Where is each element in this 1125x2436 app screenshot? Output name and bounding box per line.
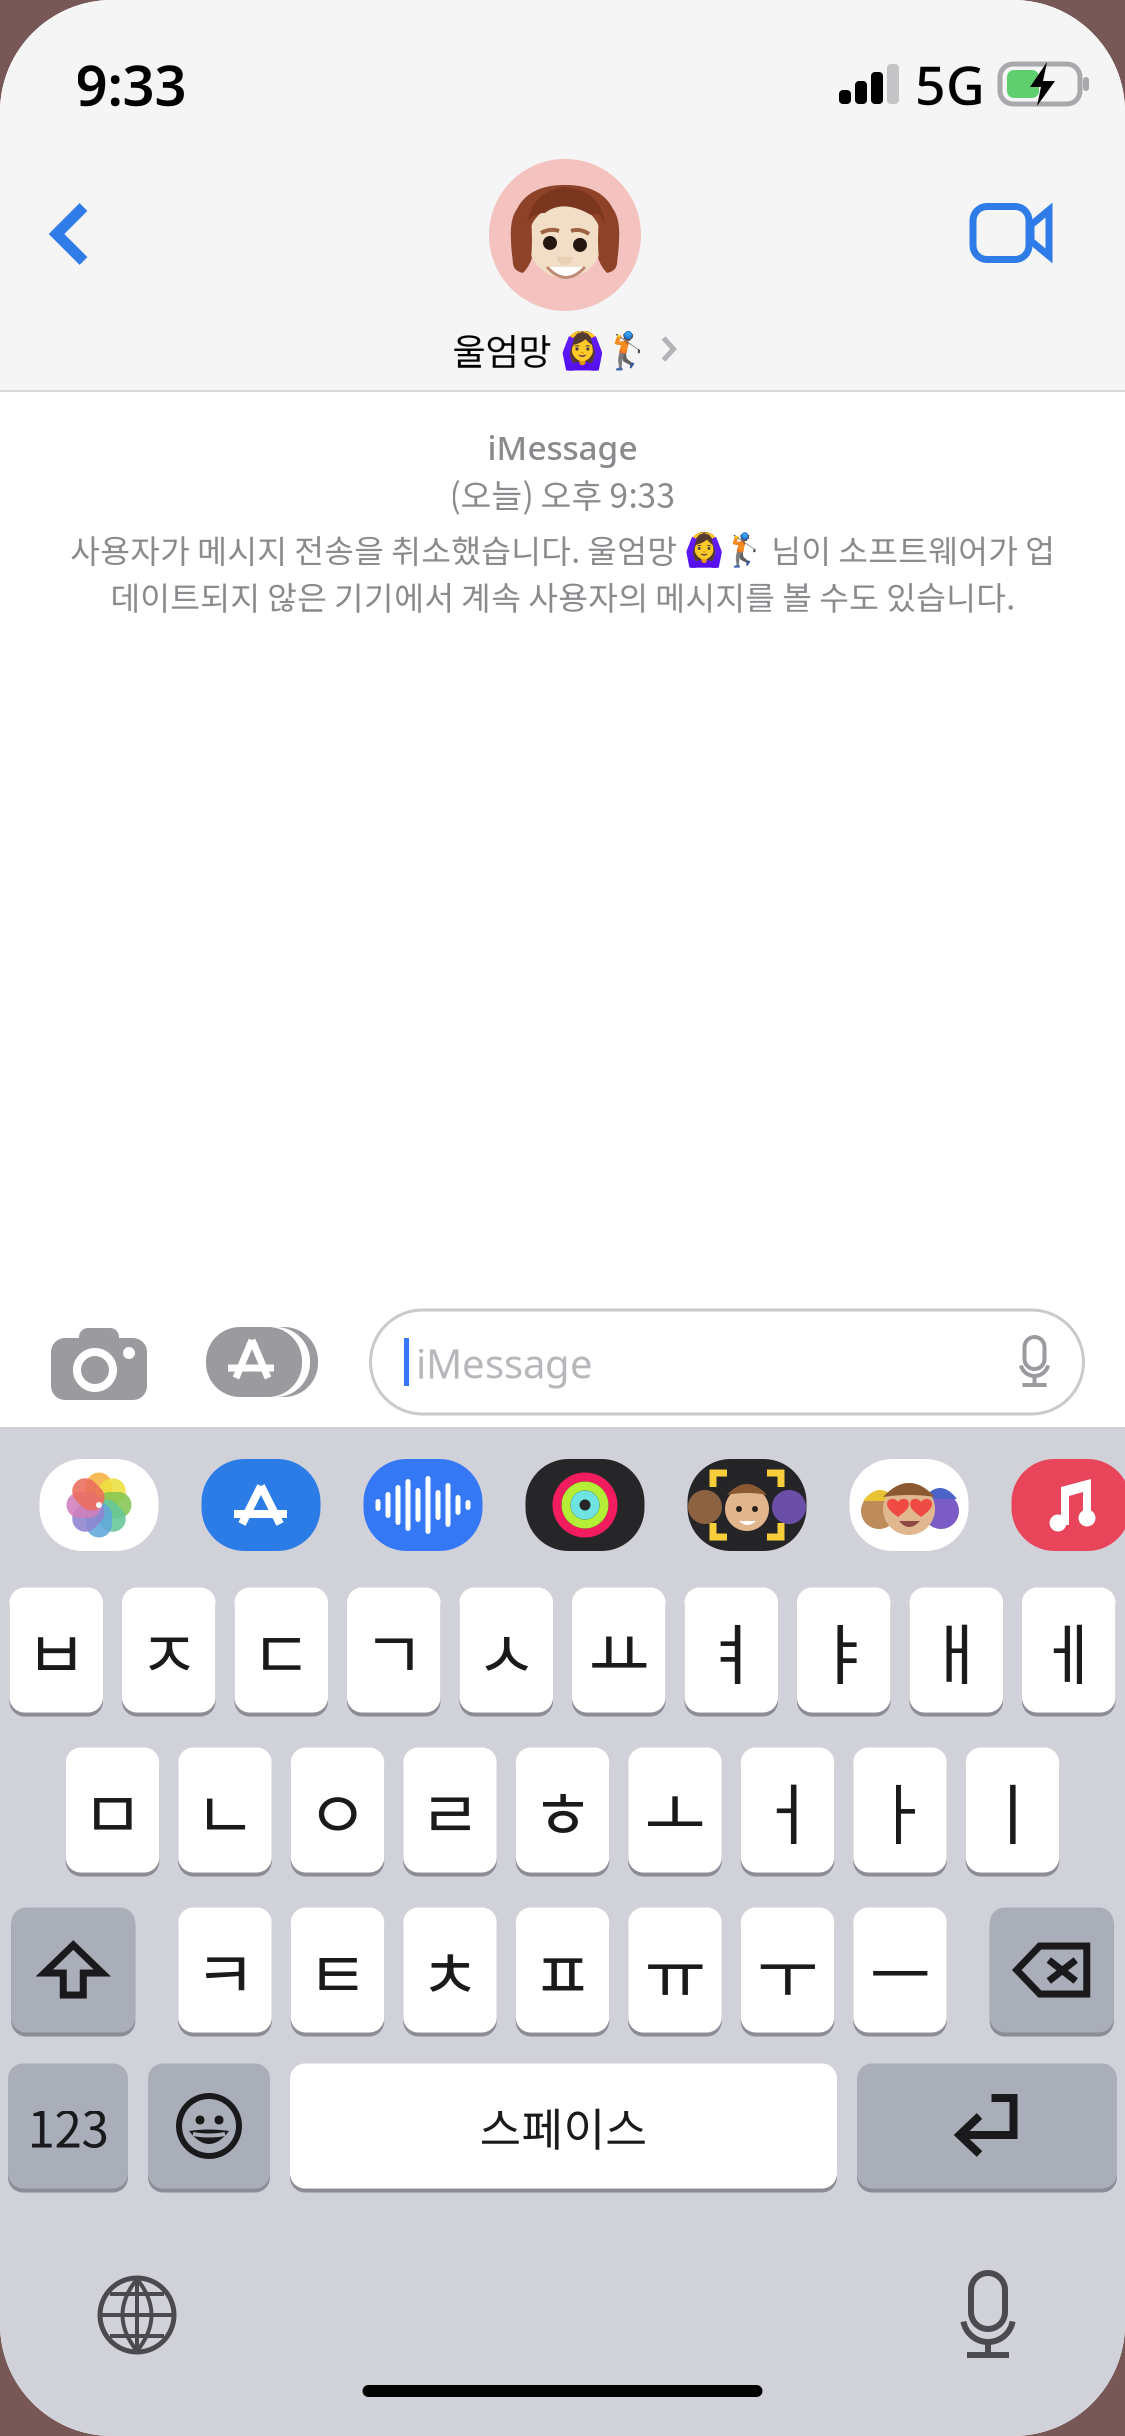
button[interactable]: 스페이스 [290, 2059, 837, 2192]
staticText: iMessage [416, 1336, 593, 1389]
staticText: 스페이스 [479, 2093, 647, 2159]
button[interactable]: ㅌ [291, 1903, 384, 2036]
staticText: ㄹ [419, 1762, 480, 1858]
button[interactable]: Delete [990, 1903, 1114, 2036]
button[interactable]: ㄷ [234, 1583, 328, 1716]
button[interactable]: Emoji [148, 2059, 270, 2192]
button[interactable]: ㅐ [909, 1583, 1003, 1716]
staticText: ㅕ [701, 1602, 762, 1698]
button[interactable]: ㅂ [9, 1583, 103, 1716]
button[interactable]: FaceTime [947, 173, 1077, 293]
button[interactable]: 울엄망 🙆‍♀️🏌️ [285, 156, 845, 376]
staticText: ㅗ [644, 1762, 705, 1858]
button[interactable]: ㄱ [347, 1583, 440, 1716]
button[interactable]: Audio message [363, 1459, 482, 1551]
button[interactable]: Photos [39, 1459, 158, 1551]
staticText: ㅡ [869, 1922, 930, 2018]
button[interactable]: ㅊ [403, 1903, 497, 2036]
staticText: 울엄망 🙆‍♀️🏌️ [452, 323, 649, 375]
button[interactable]: ㅋ [178, 1903, 272, 2036]
button[interactable]: ㅣ [966, 1743, 1059, 1876]
staticText: ㅇ [307, 1762, 368, 1858]
staticText: ㅠ [644, 1922, 705, 2018]
button[interactable]: ㅛ [572, 1583, 665, 1716]
button[interactable]: ㅗ [628, 1743, 722, 1876]
staticText: ㅛ [588, 1602, 649, 1698]
button[interactable]: Back [10, 174, 130, 294]
staticText: ㅍ [532, 1922, 593, 2018]
button[interactable]: Next keyboard [77, 2260, 197, 2370]
staticText: ㅓ [757, 1762, 818, 1858]
button[interactable]: ㅠ [628, 1903, 722, 2036]
button[interactable]: Camera [34, 1302, 164, 1422]
button[interactable]: ㅡ [853, 1903, 947, 2036]
button[interactable]: Apps [197, 1302, 327, 1422]
staticText: ㅋ [194, 1922, 255, 2018]
staticText: ㅎ [532, 1762, 593, 1858]
staticText: ㅔ [1038, 1602, 1099, 1698]
button[interactable]: ㅈ [122, 1583, 215, 1716]
staticText: (오늘) 오후 9:33 [449, 469, 675, 518]
staticText: ㅏ [869, 1762, 930, 1858]
staticText: ㅐ [926, 1602, 987, 1698]
button[interactable]: Stickers [849, 1459, 968, 1551]
staticText: ㅁ [82, 1762, 143, 1858]
staticText: iMessage [487, 425, 637, 469]
button[interactable]: Music [1011, 1459, 1125, 1551]
button[interactable]: ㅏ [853, 1743, 947, 1876]
staticText: 9:33 [75, 47, 186, 121]
staticText: 5G [915, 49, 985, 119]
staticText: ㅊ [419, 1922, 480, 2018]
staticText: ㅅ [476, 1602, 537, 1698]
button[interactable]: Dictation [928, 2260, 1048, 2370]
button[interactable]: Memoji [687, 1459, 806, 1551]
button[interactable]: ㅍ [516, 1903, 609, 2036]
button[interactable]: ㅜ [741, 1903, 834, 2036]
button[interactable]: Return [857, 2059, 1117, 2192]
button[interactable]: ㅅ [459, 1583, 553, 1716]
staticText: 123 [27, 2090, 108, 2162]
button[interactable]: ㅎ [516, 1743, 609, 1876]
staticText: ㅜ [757, 1922, 818, 2018]
button[interactable]: ㅇ [291, 1743, 384, 1876]
button[interactable]: ㅕ [684, 1583, 778, 1716]
staticText: ㅌ [307, 1922, 368, 2018]
button[interactable]: ㅑ [797, 1583, 890, 1716]
staticText: ㅂ [26, 1602, 87, 1698]
button[interactable]: 123 [8, 2059, 128, 2192]
staticText: ㅈ [138, 1602, 199, 1698]
staticText: ㄷ [251, 1602, 312, 1698]
button[interactable]: ㄴ [178, 1743, 272, 1876]
staticText: ㄱ [363, 1602, 424, 1698]
staticText: ㅣ [982, 1762, 1043, 1858]
staticText: 사용자가 메시지 전송을 취소했습니다. 울엄망 🙆‍♀️🏌️ 님이 소프트웨어… [70, 525, 1055, 619]
button[interactable]: ㅓ [741, 1743, 834, 1876]
button[interactable]: iMessage [370, 1310, 1083, 1414]
button[interactable]: App Store [201, 1459, 320, 1551]
button[interactable]: ㅔ [1022, 1583, 1115, 1716]
staticText: ㅑ [813, 1602, 874, 1698]
button[interactable]: Shift [11, 1903, 135, 2036]
staticText: ㄴ [194, 1762, 255, 1858]
button[interactable]: ㄹ [403, 1743, 497, 1876]
button[interactable]: ㅁ [66, 1743, 159, 1876]
button[interactable]: Fitness [525, 1459, 644, 1551]
